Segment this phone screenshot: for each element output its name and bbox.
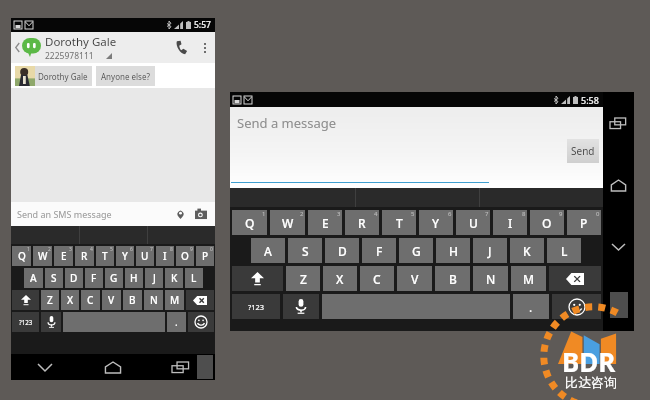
button[interactable]: Camera [190,203,212,225]
button[interactable]: G [105,268,123,288]
button[interactable]: E [308,210,342,235]
button[interactable]: Location [170,204,190,224]
button[interactable]: Emoji [552,294,601,319]
button[interactable]: Voice input [41,312,61,332]
staticText: 8 [522,210,526,218]
staticText: 3 [69,246,72,253]
staticText: P [202,249,209,263]
button[interactable]: F [85,268,103,288]
button[interactable]: H [125,268,143,288]
button[interactable]: N [144,290,163,310]
button[interactable]: S [45,268,63,288]
button[interactable]: M [511,266,546,291]
staticText: 2 [48,246,51,253]
button[interactable]: C [81,290,100,310]
button[interactable]: Z [41,290,59,310]
button[interactable]: Symbols [12,312,39,332]
staticText: 4 [90,246,93,253]
button[interactable]: Q [12,246,31,266]
button[interactable]: S [288,238,322,263]
button[interactable]: Y [116,246,134,266]
staticText: G [412,243,421,259]
button[interactable]: N [473,266,508,291]
button[interactable]: D [325,238,359,263]
button[interactable]: Home [603,154,634,216]
button[interactable]: J [145,268,163,288]
button[interactable]: Home [79,354,147,380]
button[interactable]: B [123,290,142,310]
button[interactable]: O [530,210,564,235]
button[interactable]: E [54,246,73,266]
button[interactable]: J [473,238,507,263]
button[interactable]: T [96,246,114,266]
button[interactable]: Hide keyboard [603,216,634,278]
staticText: 6 [448,210,452,218]
button[interactable]: D [65,268,83,288]
button[interactable]: Backspace [549,266,601,291]
button[interactable]: F [362,238,396,263]
staticText: 1 [27,246,30,253]
button[interactable]: Shift [12,290,39,310]
button[interactable]: B [435,266,470,291]
button[interactable]: Period [513,294,549,319]
button[interactable]: L [185,268,203,288]
button[interactable]: Dorothy Gale [15,66,92,86]
button[interactable]: Y [419,210,453,235]
button[interactable]: U [456,210,490,235]
button[interactable]: Voice input [283,294,319,319]
button[interactable]: V [397,266,432,291]
button[interactable]: Recents [147,354,215,380]
button[interactable]: G [399,238,433,263]
button[interactable]: T [382,210,416,235]
button[interactable]: L [547,238,581,263]
button[interactable]: I [156,246,174,266]
button[interactable]: O [176,246,194,266]
button[interactable]: W [33,246,52,266]
button[interactable]: Call [167,32,195,63]
button[interactable]: Shift [232,266,283,291]
button[interactable]: Symbols [232,294,280,319]
button[interactable]: V [102,290,121,310]
staticText: Send an SMS message [17,208,170,220]
staticText: A [30,271,37,285]
button[interactable]: R [75,246,94,266]
button[interactable]: U [136,246,154,266]
staticText: Anyone else? [101,71,150,82]
button[interactable]: Q [232,210,267,235]
button[interactable]: K [510,238,544,263]
button[interactable]: Hide keyboard [11,354,79,380]
button[interactable]: H [436,238,470,263]
button[interactable]: R [345,210,379,235]
button[interactable]: Back [11,32,45,63]
button[interactable]: C [360,266,394,291]
button[interactable]: M [165,290,184,310]
staticText: 比达咨询 [565,374,617,390]
staticText: M [170,293,180,307]
button[interactable]: K [165,268,183,288]
staticText: 2225978111 [45,50,94,62]
button[interactable]: More options [195,32,215,63]
button[interactable]: Z [286,266,320,291]
button[interactable]: X [323,266,357,291]
button[interactable]: Send [567,139,599,163]
button[interactable]: X [61,290,79,310]
staticText: C [373,271,381,287]
button[interactable]: A [251,238,285,263]
button[interactable]: W [270,210,305,235]
button[interactable]: I [493,210,527,235]
button[interactable]: Emoji [188,312,214,332]
staticText: K [171,271,178,285]
button[interactable]: P [567,210,601,235]
button[interactable]: A [24,268,43,288]
button[interactable]: Period [167,312,186,332]
staticText: W [38,249,48,263]
staticText: V [411,271,419,287]
button[interactable]: Anyone else? [101,66,150,86]
button[interactable]: Backspace [186,290,214,310]
staticText: W [282,215,294,231]
staticText: 7 [150,246,153,253]
button[interactable]: P [196,246,214,266]
button[interactable]: Recents [603,92,634,154]
